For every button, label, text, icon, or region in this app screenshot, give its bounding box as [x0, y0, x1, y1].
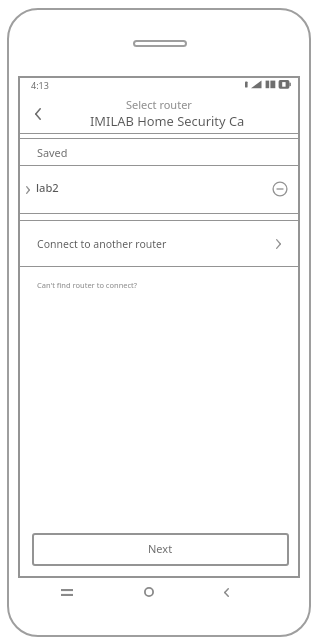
staticText: IMILAB Home Security Ca: [90, 112, 245, 130]
button[interactable]: lab2: [18, 165, 300, 213]
staticText: Connect to another router: [37, 237, 167, 251]
button[interactable]: Can't find router to connect?: [34, 276, 142, 294]
button[interactable]: Back: [212, 578, 240, 606]
staticText: lab2: [36, 180, 59, 195]
button[interactable]: Recent apps: [53, 578, 81, 606]
button[interactable]: Connect to another router: [18, 220, 300, 266]
staticText: 4:13: [31, 79, 49, 91]
staticText: Can't find router to connect?: [37, 280, 138, 290]
button[interactable]: Next: [32, 533, 289, 566]
staticText: Next: [148, 541, 173, 556]
staticText: Saved: [37, 145, 68, 160]
button[interactable]: Home: [135, 578, 163, 606]
button[interactable]: Back: [24, 100, 52, 128]
staticText: Select router: [126, 97, 192, 112]
